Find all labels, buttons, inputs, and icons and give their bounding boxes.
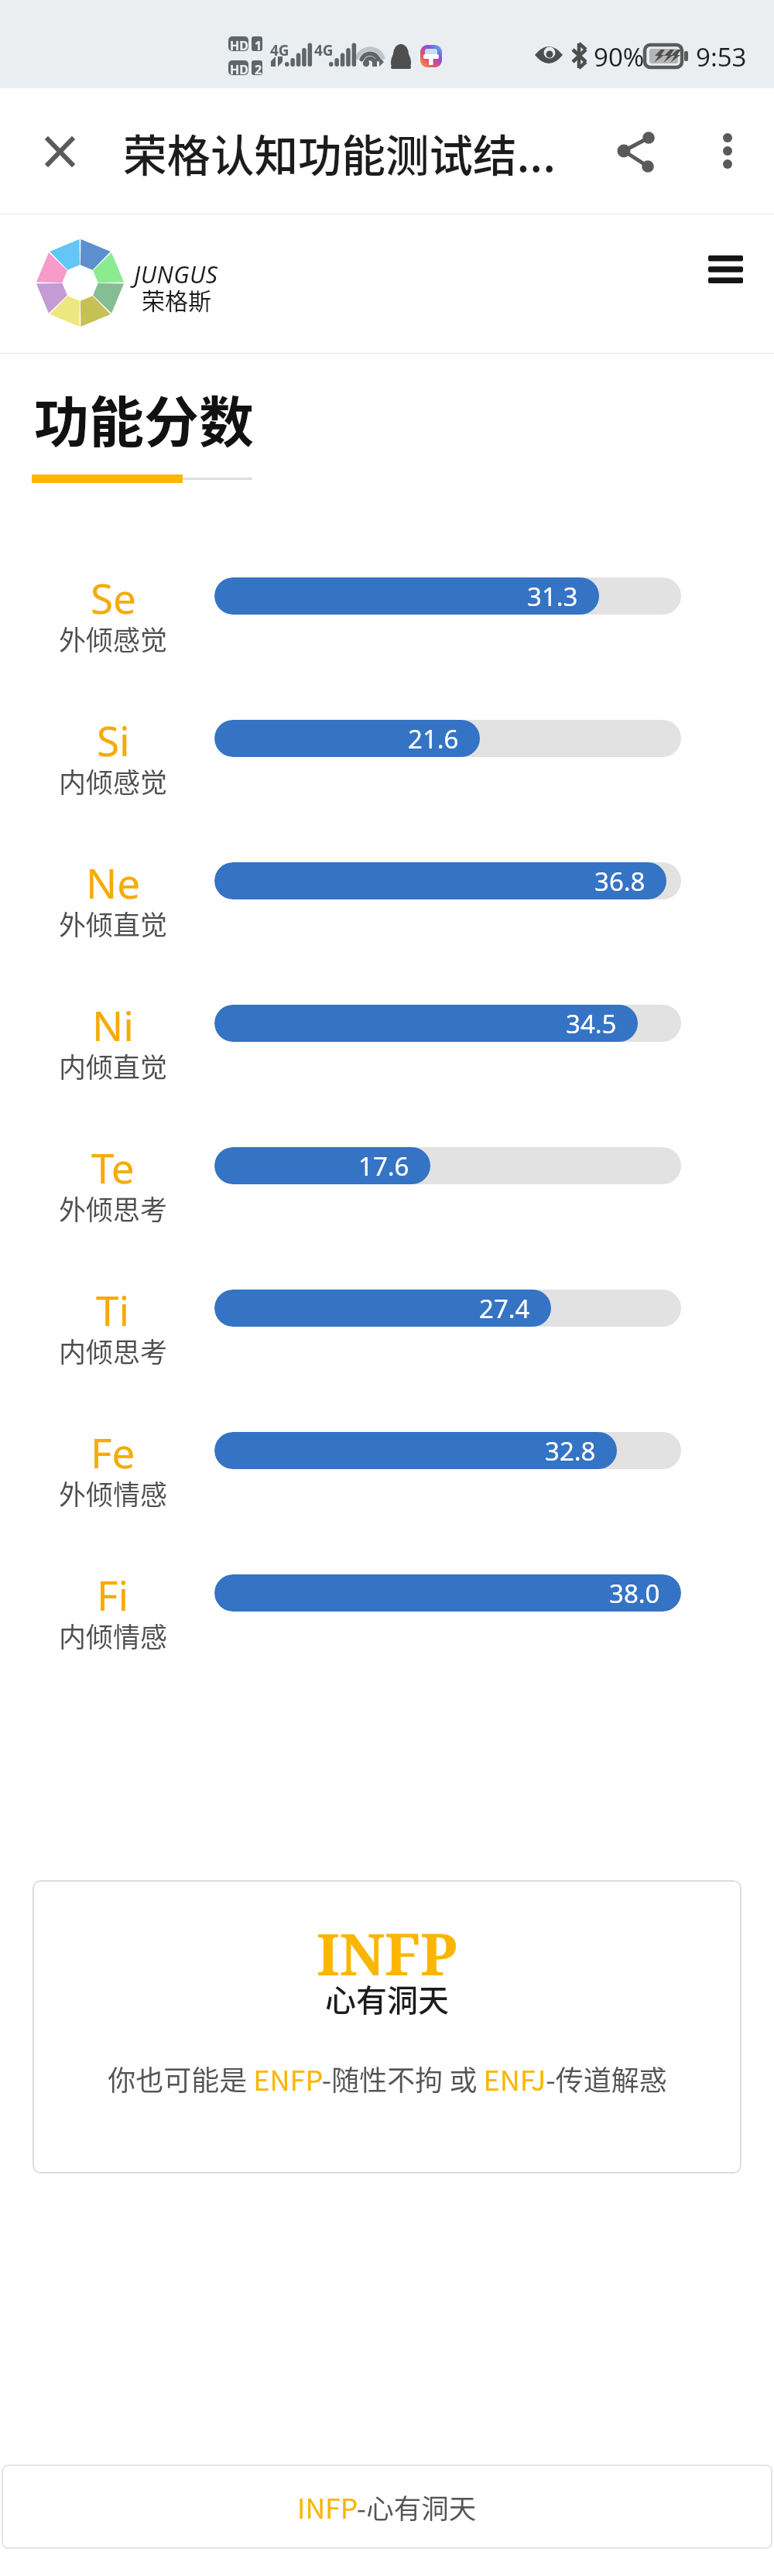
staticText: Ne — [86, 855, 141, 910]
staticText: 90% — [594, 39, 645, 74]
button[interactable]: Close — [26, 117, 94, 185]
staticText: 内倾思考 — [59, 1331, 168, 1370]
staticText: 荣格认知功能测试结... — [123, 121, 557, 184]
staticText: 4G — [270, 40, 289, 60]
staticText: HD — [230, 61, 248, 78]
button[interactable]: Share — [605, 117, 673, 185]
staticText: JUNGUS — [134, 259, 218, 290]
staticText: 外倾思考 — [59, 1188, 168, 1228]
button[interactable]: More options — [694, 117, 762, 185]
staticText: Si — [97, 712, 130, 768]
staticText: 内倾情感 — [59, 1615, 168, 1655]
staticText: INFP — [317, 1914, 457, 1992]
staticText: 荣格斯 — [142, 283, 211, 316]
staticText: INFP-心有洞天 — [297, 2487, 477, 2526]
staticText: 36.8 — [594, 864, 646, 899]
staticText: 外倾直觉 — [59, 903, 168, 943]
staticText: 9:53 — [696, 39, 747, 74]
staticText: 17.6 — [358, 1149, 409, 1184]
staticText: 外倾感觉 — [59, 618, 168, 658]
button[interactable]: INFP-心有洞天 — [2, 2465, 772, 2549]
staticText: 27.4 — [479, 1291, 530, 1326]
staticText: Fe — [91, 1424, 135, 1480]
staticText: 你也可能是 ENFP-随性不拘 或 ENFJ-传道解惑 — [108, 2058, 667, 2098]
staticText: HD — [230, 37, 248, 54]
staticText: 32.8 — [545, 1434, 596, 1468]
staticText: Ti — [96, 1282, 130, 1338]
button[interactable]: INFP — [33, 1880, 741, 2173]
staticText: 外倾情感 — [59, 1473, 168, 1512]
staticText: Se — [91, 570, 136, 625]
staticText: Te — [91, 1139, 135, 1195]
staticText: 功能分数 — [34, 379, 255, 458]
staticText: 心有洞天 — [325, 1976, 449, 2021]
staticText: 内倾感觉 — [59, 761, 168, 800]
staticText: 4G — [314, 40, 334, 60]
staticText: 内倾直觉 — [59, 1046, 168, 1085]
button[interactable]: Menu — [690, 235, 760, 304]
staticText: 1 — [255, 37, 262, 54]
staticText: Fi — [97, 1567, 129, 1622]
staticText: 21.6 — [408, 721, 459, 756]
staticText: Ni — [92, 997, 134, 1053]
staticText: 2 — [255, 61, 262, 78]
staticText: 38.0 — [609, 1576, 660, 1611]
staticText: 31.3 — [527, 579, 578, 614]
staticText: 34.5 — [566, 1006, 617, 1041]
